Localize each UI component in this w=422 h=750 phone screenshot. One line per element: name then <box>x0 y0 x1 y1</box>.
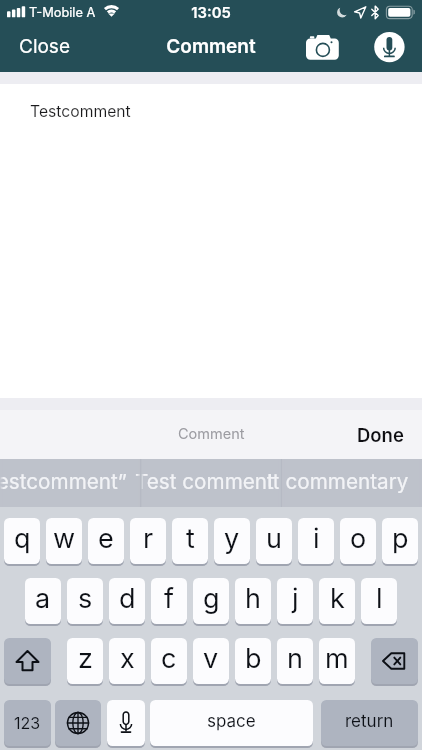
button[interactable]: Shift <box>4 638 51 684</box>
button[interactable]: Done <box>351 421 410 449</box>
button[interactable]: It commentary <box>281 459 422 507</box>
button[interactable]: w <box>46 518 82 564</box>
staticText: k <box>330 582 345 615</box>
staticText: i <box>313 522 320 555</box>
button[interactable]: Dictation <box>107 700 145 746</box>
button[interactable]: v <box>193 638 229 684</box>
button[interactable]: Close <box>10 31 79 62</box>
button[interactable]: d <box>109 578 145 624</box>
staticText: y <box>224 522 240 555</box>
staticText: d <box>119 582 136 615</box>
staticText: It commentary <box>267 469 408 494</box>
staticText: l <box>376 582 383 615</box>
button[interactable]: q <box>4 518 40 564</box>
staticText: c <box>161 642 177 675</box>
staticText: e <box>98 522 114 555</box>
button[interactable]: y <box>214 518 250 564</box>
button[interactable]: x <box>109 638 145 684</box>
staticText: m <box>325 642 349 675</box>
button[interactable]: p <box>382 518 418 564</box>
button[interactable]: e <box>88 518 124 564</box>
staticText: p <box>392 522 409 555</box>
staticText: w <box>53 522 76 555</box>
staticText: a <box>35 582 51 615</box>
staticText: T-Mobile A <box>29 5 96 20</box>
staticText: s <box>78 582 93 615</box>
button[interactable]: Comment <box>172 422 251 446</box>
staticText: space <box>207 711 256 732</box>
staticText: Close <box>19 35 70 58</box>
button[interactable]: Delete <box>371 638 418 684</box>
button[interactable]: j <box>277 578 313 624</box>
button[interactable]: Testcomment” <box>0 459 141 507</box>
staticText: o <box>350 522 367 555</box>
button[interactable]: g <box>193 578 229 624</box>
button[interactable]: Change keyboard <box>55 700 101 746</box>
button[interactable]: f <box>151 578 187 624</box>
button[interactable]: Take photo <box>299 25 346 72</box>
staticText: u <box>266 522 282 555</box>
button[interactable]: space <box>150 700 313 746</box>
button[interactable]: a <box>25 578 61 624</box>
staticText: q <box>14 522 31 555</box>
button[interactable]: s <box>67 578 103 624</box>
staticText: Done <box>357 424 404 446</box>
button[interactable]: o <box>340 518 376 564</box>
button[interactable]: b <box>235 638 271 684</box>
button[interactable]: h <box>235 578 271 624</box>
staticText: b <box>245 642 262 675</box>
staticText: t <box>186 522 195 555</box>
button[interactable]: k <box>319 578 355 624</box>
button[interactable]: c <box>151 638 187 684</box>
button[interactable]: 123 <box>4 700 51 746</box>
button[interactable]: Voice input <box>366 24 413 71</box>
staticText: 13:05 <box>0 4 422 22</box>
button[interactable]: return <box>321 700 418 746</box>
button[interactable]: m <box>319 638 355 684</box>
staticText: 123 <box>14 713 41 732</box>
staticText: x <box>120 642 135 675</box>
staticText: return <box>345 711 394 732</box>
button[interactable]: r <box>130 518 166 564</box>
button[interactable]: l <box>361 578 397 624</box>
button[interactable]: t <box>172 518 208 564</box>
staticText: Comment <box>178 425 245 443</box>
staticText: v <box>203 642 219 675</box>
button[interactable]: u <box>256 518 292 564</box>
staticText: r <box>143 522 154 555</box>
button[interactable]: z <box>67 638 103 684</box>
button[interactable]: Test comment <box>141 459 282 507</box>
button[interactable]: i <box>298 518 334 564</box>
button[interactable]: n <box>277 638 313 684</box>
staticText: h <box>245 582 261 615</box>
staticText: Testcomment <box>30 102 131 121</box>
staticText: Comment <box>0 35 422 58</box>
staticText: Testcomment” <box>0 469 126 494</box>
staticText: Test comment <box>135 469 274 494</box>
staticText: g <box>203 582 220 615</box>
staticText: z <box>78 642 93 675</box>
staticText: f <box>164 582 174 615</box>
staticText: n <box>287 642 303 675</box>
staticText: j <box>292 582 299 615</box>
